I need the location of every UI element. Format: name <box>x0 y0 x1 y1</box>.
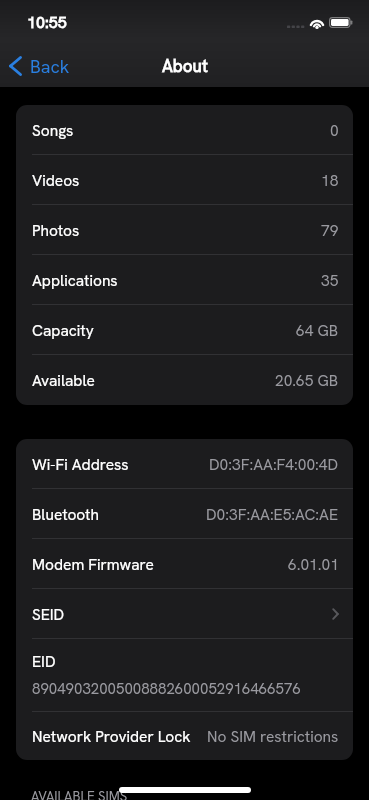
button[interactable]: Modem Firmware <box>16 539 353 589</box>
staticText: 10:55 <box>27 12 67 33</box>
button[interactable]: Photos <box>16 205 353 255</box>
staticText: 79 <box>321 220 339 240</box>
staticText: About <box>162 55 208 77</box>
staticText: D0:3F:AA:E5:AC:AE <box>206 504 339 524</box>
staticText: AVAILABLE SIMS <box>31 788 128 800</box>
staticText: Wi-Fi Address <box>32 454 129 474</box>
staticText: Songs <box>32 120 74 140</box>
staticText: Videos <box>32 170 80 190</box>
staticText: Photos <box>32 220 80 240</box>
staticText: 6.01.01 <box>288 554 339 574</box>
staticText: 64 GB <box>296 320 339 340</box>
button[interactable]: Songs <box>16 105 353 155</box>
staticText: 89049032005008882600052916466576 <box>32 679 301 699</box>
button[interactable]: Bluetooth <box>16 489 353 539</box>
other: Home indicator <box>119 787 251 793</box>
button[interactable]: EID <box>16 639 353 712</box>
other: Battery <box>329 17 353 28</box>
staticText: Network Provider Lock <box>32 726 191 746</box>
staticText: D0:3F:AA:F4:00:4D <box>209 454 339 474</box>
staticText: Applications <box>32 270 118 290</box>
other: Wi-Fi <box>309 17 325 28</box>
staticText: 35 <box>321 270 339 290</box>
staticText: Available <box>32 370 95 390</box>
staticText: 18 <box>321 170 339 190</box>
button[interactable]: Network Provider Lock <box>16 712 353 760</box>
staticText: Capacity <box>32 320 94 340</box>
staticText: Modem Firmware <box>32 554 154 574</box>
button[interactable]: Wi-Fi Address <box>16 439 353 489</box>
staticText: Back <box>30 55 70 78</box>
staticText: Bluetooth <box>32 504 99 524</box>
button[interactable]: Videos <box>16 155 353 205</box>
button[interactable]: Applications <box>16 255 353 305</box>
staticText: SEID <box>32 604 65 624</box>
button[interactable]: SEID <box>16 589 353 639</box>
button[interactable]: Capacity <box>16 305 353 355</box>
staticText: 20.65 GB <box>275 370 339 390</box>
staticText: EID <box>32 651 56 671</box>
button[interactable]: Available <box>16 355 353 405</box>
button[interactable]: Back <box>0 46 80 86</box>
staticText: 0 <box>330 120 339 140</box>
staticText: No SIM restrictions <box>207 726 339 746</box>
